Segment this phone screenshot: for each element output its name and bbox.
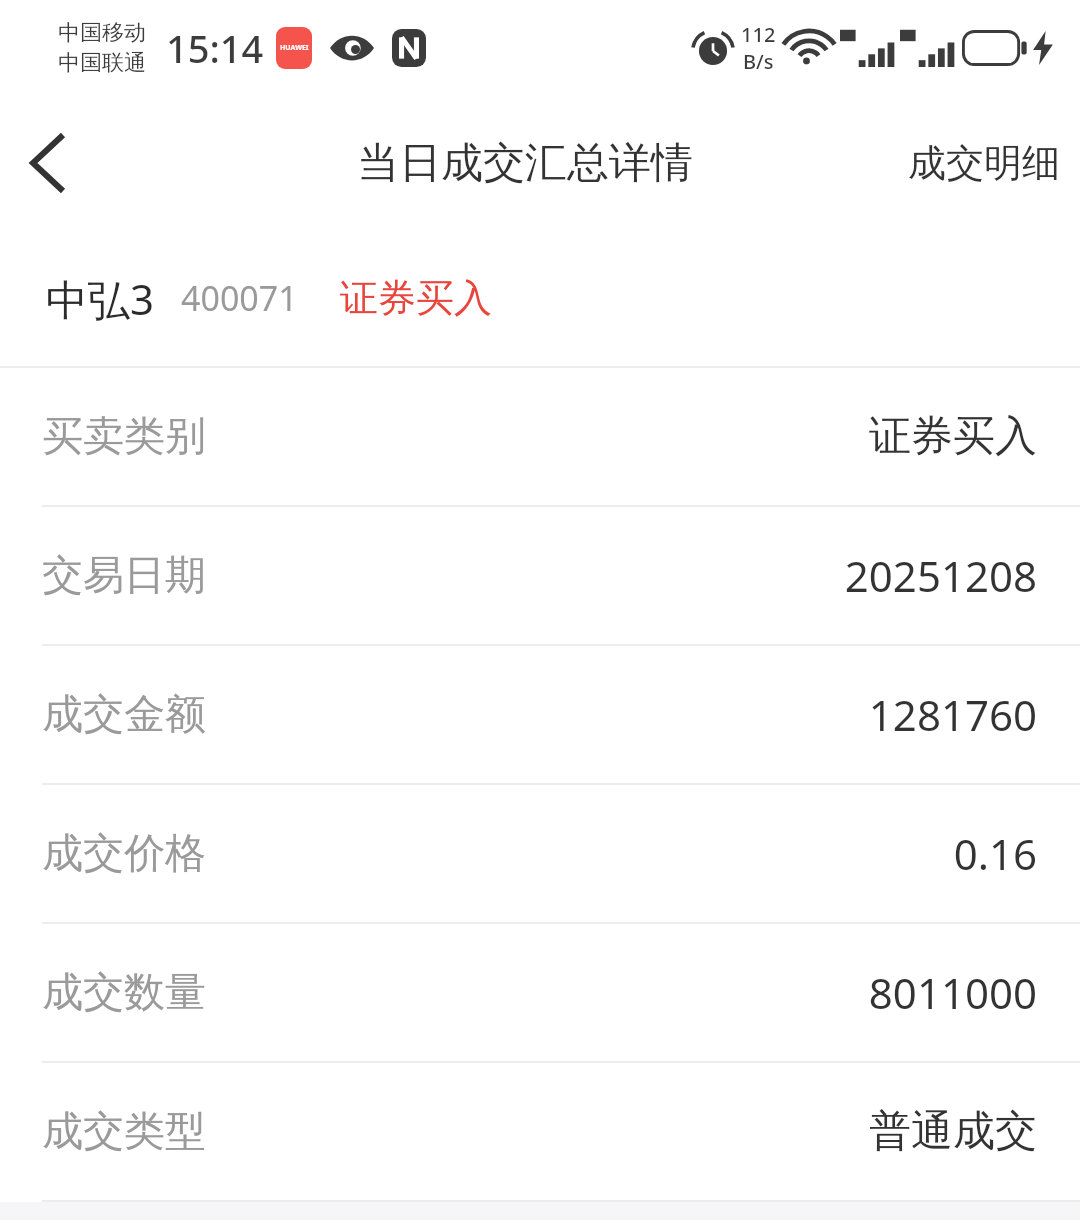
staticText: 0.16 — [953, 825, 1037, 882]
button[interactable]: 成交价格 — [0, 785, 1080, 922]
button[interactable]: 买卖类别 — [0, 368, 1080, 505]
staticText: 成交明细 — [908, 139, 1060, 187]
staticText: 证券买入 — [869, 410, 1037, 463]
staticText: 15:14 — [166, 22, 264, 74]
staticText: 成交数量 — [42, 967, 206, 1019]
staticText: B/s — [743, 48, 774, 75]
button[interactable]: 成交数量 — [0, 924, 1080, 1061]
button[interactable]: 成交明细 — [888, 115, 1080, 211]
staticText: 8011000 — [868, 964, 1037, 1021]
button[interactable]: 成交金额 — [0, 646, 1080, 783]
button[interactable]: 成交类型 — [0, 1063, 1080, 1200]
staticText: 成交金额 — [42, 689, 206, 741]
staticText: 中弘3 — [46, 270, 155, 327]
staticText: HUAWEI — [280, 43, 309, 53]
staticText: 20251208 — [844, 547, 1037, 604]
button[interactable]: Back — [0, 108, 96, 218]
button[interactable]: 交易日期 — [0, 507, 1080, 644]
staticText: 112 — [741, 21, 776, 48]
staticText: 交易日期 — [42, 550, 206, 602]
staticText: 成交价格 — [42, 828, 206, 880]
staticText: 中国联通 — [58, 49, 146, 77]
button[interactable]: 中弘3 — [0, 230, 1080, 366]
staticText: 1281760 — [868, 686, 1037, 743]
staticText: 证券买入 — [340, 274, 492, 322]
staticText: 成交类型 — [42, 1106, 206, 1158]
staticText: 400071 — [181, 275, 298, 321]
staticText: 当日成交汇总详情 — [357, 137, 693, 190]
staticText: 中国移动 — [58, 19, 146, 47]
staticText: 买卖类别 — [42, 411, 206, 463]
staticText: 普通成交 — [869, 1105, 1037, 1158]
